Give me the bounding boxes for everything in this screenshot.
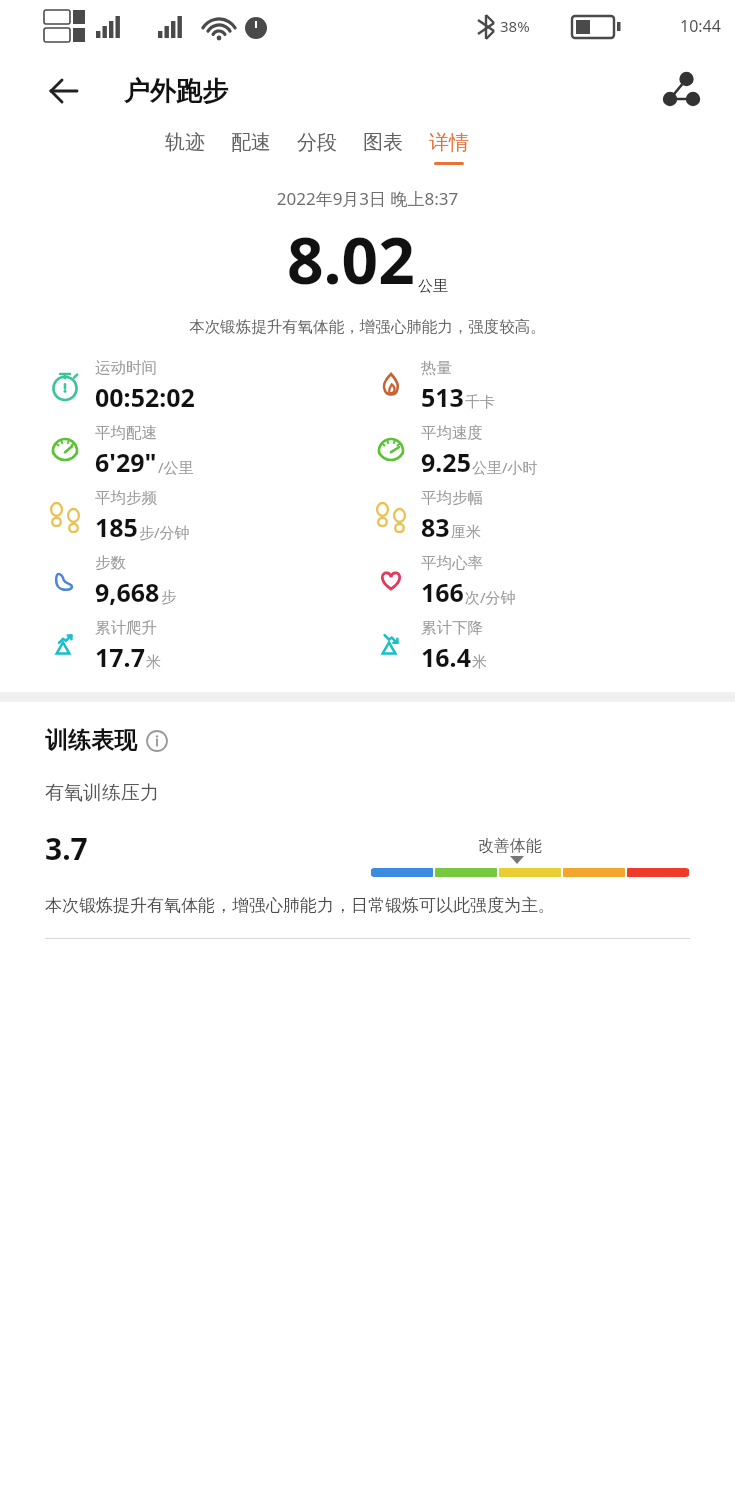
button[interactable]: 轨迹	[152, 130, 218, 165]
staticText: 本次锻炼提升有氧体能，增强心肺能力，日常锻炼可以此强度为主。	[45, 895, 555, 916]
staticText: 改善体能	[478, 836, 542, 856]
staticText: 公里/小时	[472, 457, 538, 477]
staticText: 图表	[363, 130, 403, 155]
button[interactable]: Back	[42, 69, 86, 113]
staticText: 平均步幅	[421, 488, 483, 508]
staticText: 热量	[421, 358, 452, 378]
button[interactable]: Share	[655, 66, 705, 116]
staticText: 厘米	[451, 523, 481, 542]
staticText: 轨迹	[165, 130, 205, 155]
staticText: 2022年9月3日 晚上8:37	[0, 187, 735, 210]
button[interactable]: 热量	[371, 353, 735, 418]
staticText: 平均步频	[95, 488, 157, 508]
button[interactable]: 分段	[284, 130, 350, 165]
staticText: 166	[421, 575, 464, 609]
button[interactable]: 详情	[416, 130, 482, 165]
staticText: 17.7	[95, 640, 145, 674]
staticText: 平均心率	[421, 553, 483, 573]
button[interactable]: 运动时间	[45, 353, 367, 418]
staticText: 步数	[95, 553, 126, 573]
staticText: 累计爬升	[95, 618, 157, 638]
staticText: 00:52:02	[95, 380, 195, 414]
staticText: 16.4	[421, 640, 471, 674]
staticText: 3.7	[45, 828, 88, 869]
button[interactable]: 步数	[45, 548, 367, 613]
staticText: 步	[161, 588, 176, 607]
staticText: 513	[421, 380, 464, 414]
staticText: 83	[421, 510, 450, 544]
button[interactable]: 训练表现	[45, 726, 168, 755]
staticText: 步/分钟	[139, 522, 190, 542]
button[interactable]: 平均配速	[45, 418, 367, 483]
staticText: 185	[95, 510, 138, 544]
staticText: 38%	[500, 16, 530, 36]
staticText: 平均速度	[421, 423, 483, 443]
button[interactable]: 累计下降	[371, 613, 735, 678]
staticText: 有氧训练压力	[45, 781, 159, 805]
button[interactable]: 图表	[350, 130, 416, 165]
other: Info	[146, 730, 168, 752]
staticText: 详情	[429, 130, 469, 155]
staticText: 训练表现	[45, 726, 137, 755]
staticText: 米	[146, 653, 161, 672]
staticText: 运动时间	[95, 358, 157, 378]
staticText: 10:44	[680, 15, 721, 37]
staticText: 配速	[231, 130, 271, 155]
button[interactable]: 平均步频	[45, 483, 367, 548]
button[interactable]: 配速	[218, 130, 284, 165]
staticText: 8.02	[287, 216, 415, 303]
staticText: 平均配速	[95, 423, 157, 443]
staticText: 6'29"	[95, 445, 157, 479]
button[interactable]: 累计爬升	[45, 613, 367, 678]
staticText: 9,668	[95, 575, 160, 609]
staticText: 9.25	[421, 445, 471, 479]
button[interactable]: 平均速度	[371, 418, 735, 483]
staticText: 户外跑步	[124, 75, 228, 108]
staticText: 分段	[297, 130, 337, 155]
staticText: 千卡	[465, 393, 495, 412]
staticText: 米	[472, 653, 487, 672]
staticText: 公里	[418, 277, 448, 296]
button[interactable]: 平均步幅	[371, 483, 735, 548]
staticText: /公里	[158, 457, 194, 477]
staticText: 次/分钟	[465, 587, 516, 607]
staticText: 本次锻炼提升有氧体能，增强心肺能力，强度较高。	[0, 317, 735, 337]
staticText: 累计下降	[421, 618, 483, 638]
button[interactable]: 平均心率	[371, 548, 735, 613]
